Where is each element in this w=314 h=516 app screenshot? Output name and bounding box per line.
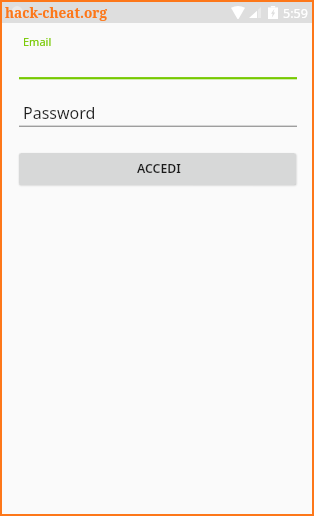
- other: Wi-Fi signal: [231, 6, 245, 19]
- other: Battery charging: [268, 6, 278, 19]
- staticText: Password: [23, 102, 96, 124]
- button[interactable]: Password: [19, 96, 296, 128]
- staticText: hack-cheat.org: [5, 3, 107, 22]
- staticText: Email: [23, 34, 52, 49]
- staticText: ACCEDI: [137, 160, 181, 177]
- staticText: 5:59: [283, 5, 308, 22]
- button[interactable]: ACCEDI: [19, 153, 296, 185]
- other: Mobile signal: [249, 7, 261, 18]
- button[interactable]: Email: [19, 28, 296, 80]
